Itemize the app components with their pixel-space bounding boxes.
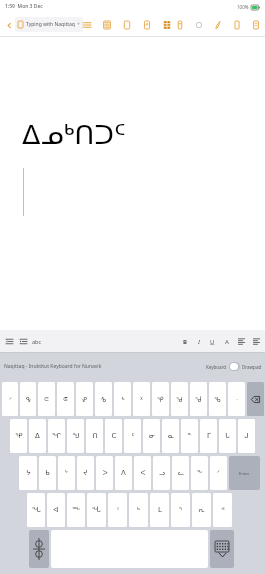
- button[interactable]: ᐳ: [96, 456, 113, 490]
- staticText: ᖖ: [72, 506, 80, 514]
- button[interactable]: ᕳ: [57, 382, 74, 416]
- button[interactable]: ᖑ: [67, 419, 84, 453]
- button[interactable]: Keyboard Drawpad toggle: [229, 362, 240, 371]
- staticText: ᖓ: [32, 506, 41, 514]
- staticText: ᑦ: [131, 432, 135, 440]
- button[interactable]: ᓂ: [143, 419, 160, 453]
- button[interactable]: List: [251, 336, 261, 346]
- staticText: ᕆ: [198, 506, 205, 514]
- staticText: ᓇ: [168, 432, 174, 440]
- button[interactable]: ᖁ: [171, 382, 188, 416]
- button[interactable]: ᐃ: [29, 419, 46, 453]
- button[interactable]: ᐟ: [2, 382, 18, 416]
- button[interactable]: ᖃ: [209, 382, 226, 416]
- button[interactable]: ᔪ: [77, 456, 94, 490]
- button[interactable]: Insert: [120, 18, 133, 31]
- button[interactable]: ᖖ: [67, 493, 85, 527]
- button[interactable]: ᓚ: [172, 456, 189, 490]
- button[interactable]: ᕹ: [95, 382, 112, 416]
- button[interactable]: ᔾ: [58, 456, 75, 490]
- button[interactable]: Media: [140, 18, 153, 31]
- button[interactable]: ᕴ: [20, 382, 36, 416]
- button[interactable]: U: [208, 337, 217, 346]
- staticText: ᕽ: [140, 396, 143, 403]
- button[interactable]: ᖕ: [191, 456, 208, 490]
- button[interactable]: ᒍ: [238, 419, 255, 453]
- button[interactable]: ᔭ: [19, 456, 37, 490]
- button[interactable]: ᒪ: [150, 493, 169, 527]
- button[interactable]: Document: [100, 18, 113, 31]
- button[interactable]: ᐸ: [134, 456, 151, 490]
- button[interactable]: I: [194, 337, 203, 346]
- button[interactable]: Table: [160, 18, 173, 31]
- button[interactable]: Hide keyboard: [210, 530, 234, 568]
- button[interactable]: ᑦ: [124, 419, 141, 453]
- button[interactable]: A: [222, 337, 231, 346]
- staticText: ᕳ: [63, 396, 68, 402]
- button[interactable]: Backspace: [247, 382, 264, 416]
- button[interactable]: ᒥ: [200, 419, 217, 453]
- button[interactable]: Outdent: [4, 336, 14, 346]
- staticText: ᕮ: [44, 396, 49, 402]
- button[interactable]: ᕮ: [38, 382, 55, 416]
- button[interactable]: ᕻ: [114, 382, 131, 416]
- staticText: ᖏ: [52, 432, 61, 440]
- button[interactable]: ᖏ: [48, 419, 65, 453]
- button[interactable]: ᖂ: [190, 382, 207, 416]
- button[interactable]: Typing with Naqittaq: [15, 17, 83, 32]
- button[interactable]: Draw: [211, 18, 224, 31]
- button[interactable]: ᓐ: [181, 419, 198, 453]
- staticText: ᖂ: [195, 396, 202, 403]
- staticText: I: [198, 338, 200, 346]
- button[interactable]: View options: [80, 18, 93, 31]
- button[interactable]: ᑕ: [105, 419, 122, 453]
- button[interactable]: ᕽ: [133, 382, 150, 416]
- staticText: ᐱ: [121, 469, 126, 477]
- staticText: ᖃ: [214, 396, 221, 403]
- button[interactable]: Comment: [192, 18, 205, 31]
- button[interactable]: ᕝ: [213, 493, 232, 527]
- button[interactable]: ᑊ: [108, 493, 127, 527]
- button[interactable]: ᑲ: [39, 456, 56, 490]
- button[interactable]: ᐟ: [210, 456, 227, 490]
- staticText: ᕝ: [221, 506, 225, 514]
- staticText: ᒍ: [244, 432, 249, 440]
- button[interactable]: ᕿ: [10, 419, 27, 453]
- staticText: Drawpad: [242, 364, 262, 370]
- button[interactable]: ᐱ: [115, 456, 132, 490]
- staticText: ᖁ: [176, 396, 183, 403]
- button[interactable]: ᖓ: [27, 493, 45, 527]
- button[interactable]: ᕆ: [192, 493, 211, 527]
- button[interactable]: Change keyboard: [29, 530, 49, 568]
- staticText: ᓚ: [178, 469, 184, 477]
- button[interactable]: Search: [230, 18, 243, 31]
- button[interactable]: B: [180, 337, 189, 346]
- button[interactable]: ᕐ: [171, 493, 190, 527]
- staticText: 100%: [237, 4, 249, 10]
- button[interactable]: ᓗ: [153, 456, 170, 490]
- staticText: ᐊ: [53, 506, 59, 514]
- staticText: ᕹ: [101, 396, 106, 403]
- staticText: ᕻ: [121, 396, 125, 403]
- staticText: Enter: [239, 471, 250, 476]
- button[interactable]: ᖀ: [152, 382, 169, 416]
- button[interactable]: ᕵ: [76, 382, 93, 416]
- button[interactable]: ᓇ: [162, 419, 179, 453]
- staticText: ᓗ: [159, 469, 165, 477]
- button[interactable]: Format: [173, 18, 186, 31]
- button[interactable]: Indent: [18, 336, 28, 346]
- staticText: abc: [32, 338, 42, 345]
- button[interactable]: ᒐ: [219, 419, 236, 453]
- button[interactable]: More: [249, 18, 262, 31]
- button[interactable]: ᖔ: [87, 493, 106, 527]
- button[interactable]: ᒃ: [129, 493, 148, 527]
- button[interactable]: Enter: [229, 456, 260, 490]
- button[interactable]: ᑎ: [86, 419, 103, 453]
- button[interactable]: ᐊ: [47, 493, 65, 527]
- button[interactable]: Back: [3, 19, 15, 31]
- staticText: Naqittaq - Inuktitut Keyboard for Nunavi…: [4, 363, 102, 370]
- button[interactable]: Align: [236, 336, 246, 346]
- staticText: +: [77, 21, 80, 28]
